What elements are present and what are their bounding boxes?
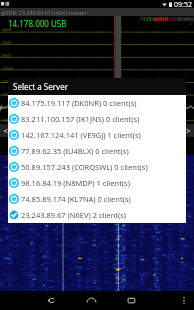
- staticText: -160dB: [1, 105, 13, 110]
- staticText: -40dB: [1, 27, 11, 32]
- button[interactable]: More options: [176, 291, 192, 310]
- staticText: 14.178.000 USB: [8, 18, 67, 29]
- staticText: -100dB: [1, 66, 13, 71]
- staticText: 98.16.84.19 (N8MDP) 1 client(s): [21, 178, 130, 188]
- staticText: 74.85.89.174 (KL7NA) 0 client(s): [21, 194, 131, 204]
- button[interactable]: 50.89.157.243 (CORQSWL) 0 client(s): [8, 159, 186, 175]
- button[interactable]: Back: [40, 291, 62, 310]
- staticText: -120dB: [1, 79, 13, 84]
- staticText: 84.175.19.117 (DK0NR) 0 client(s): [21, 98, 137, 108]
- staticText: -140dB: [1, 92, 13, 97]
- button[interactable]: Next: [182, 124, 194, 137]
- staticText: 09:52: [174, 0, 192, 8]
- staticText: -60dB: [1, 40, 11, 45]
- staticText: 9: [178, 16, 180, 21]
- button[interactable]: Previous: [0, 124, 12, 137]
- staticText: +20: [184, 16, 190, 21]
- button[interactable]: 142.167.124.141 (VE9GJ) 1 client(s): [8, 127, 186, 143]
- staticText: 77.89.62.35 (IU4BLX) 0 client(s): [21, 146, 129, 156]
- button[interactable]: 84.175.19.117 (DK0NR) 0 client(s): [8, 95, 186, 111]
- staticText: 83.211.100.157 (IK1JNS) 0 client(s): [21, 114, 140, 124]
- staticText: -80dB: [1, 53, 11, 58]
- staticText: 142.167.124.141 (VE9GJ) 1 client(s): [21, 130, 141, 140]
- button[interactable]: 98.16.84.19 (N8MDP) 1 client(s): [8, 175, 186, 191]
- button[interactable]: Recent apps: [120, 291, 142, 310]
- button[interactable]: 74.85.89.174 (KL7NA) 0 client(s): [8, 191, 186, 207]
- staticText: 7: [172, 16, 174, 21]
- staticText: -53dBm: [139, 16, 156, 22]
- staticText: 3: [160, 16, 162, 21]
- staticText: -180dB: [1, 118, 13, 123]
- staticText: 5: [166, 16, 168, 21]
- staticText: +40: [190, 16, 193, 27]
- button[interactable]: Home: [80, 291, 102, 310]
- staticText: glSDR: 23.243.89.67 (n6ev) master: [1, 9, 87, 16]
- button[interactable]: 23.243.89.67 (N6EV) 2 client(s): [8, 207, 186, 223]
- staticText: 50.89.157.243 (CORQSWL) 0 client(s): [21, 162, 148, 172]
- button[interactable]: 77.89.62.35 (IU4BLX) 0 client(s): [8, 143, 186, 159]
- staticText: 1: [154, 16, 156, 21]
- staticText: Select a Server: [13, 81, 68, 92]
- button[interactable]: 83.211.100.157 (IK1JNS) 0 client(s): [8, 111, 186, 127]
- staticText: 23.243.89.67 (N6EV) 2 client(s): [21, 210, 127, 220]
